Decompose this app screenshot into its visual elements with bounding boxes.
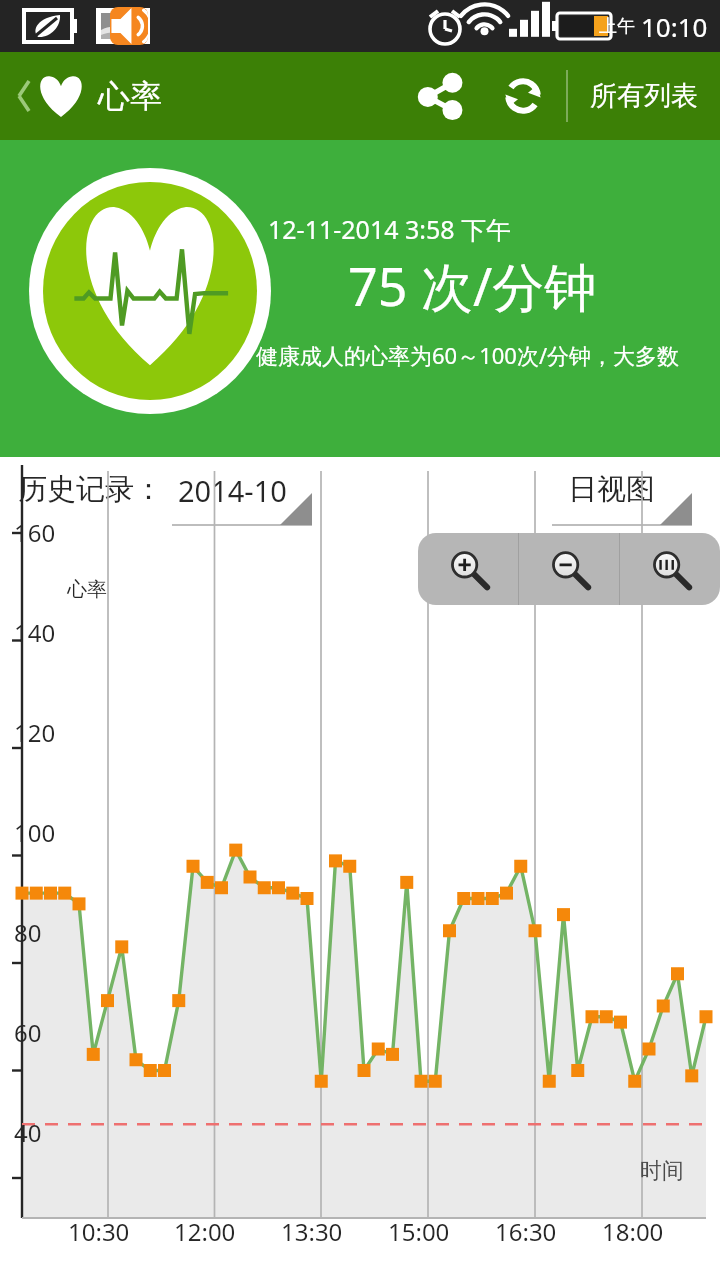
button[interactable]: 心率: [0, 67, 172, 125]
button[interactable]: 2014-10: [172, 465, 312, 527]
staticText: 日视图: [568, 471, 655, 508]
staticText: 10:10: [641, 9, 708, 44]
staticText: 心率: [67, 577, 107, 602]
staticText: 上午: [599, 15, 635, 38]
staticText: 12-11-2014 3:58 下午: [268, 212, 512, 246]
button[interactable]: Zoom in: [418, 533, 518, 605]
staticText: 历史记录：: [18, 471, 163, 508]
button[interactable]: Zoom out: [519, 533, 619, 605]
staticText: 16:30: [495, 1215, 557, 1248]
button[interactable]: Reset zoom: [620, 533, 720, 605]
button[interactable]: 日视图: [552, 465, 692, 527]
button[interactable]: Refresh: [480, 52, 566, 140]
staticText: 健康成人的心率为60～100次/分钟，大多数: [256, 340, 680, 370]
staticText: 2014-10: [178, 471, 287, 510]
staticText: 18:00: [602, 1215, 664, 1248]
staticText: 80: [14, 916, 42, 949]
staticText: 160: [14, 516, 56, 549]
staticText: 140: [14, 616, 56, 649]
staticText: 15:00: [388, 1215, 450, 1248]
staticText: 10:30: [68, 1215, 130, 1248]
staticText: 120: [14, 716, 56, 749]
staticText: 13:30: [281, 1215, 343, 1248]
staticText: 40: [14, 1116, 42, 1149]
staticText: 75 次/分钟: [348, 250, 597, 321]
staticText: 60: [14, 1016, 42, 1049]
staticText: 12:00: [174, 1215, 236, 1248]
button[interactable]: Share: [402, 52, 480, 140]
staticText: 所有列表: [590, 79, 698, 113]
staticText: 心率: [98, 76, 162, 116]
staticText: 100: [14, 816, 56, 849]
button[interactable]: 所有列表: [568, 52, 720, 140]
staticText: 时间: [640, 1157, 684, 1185]
